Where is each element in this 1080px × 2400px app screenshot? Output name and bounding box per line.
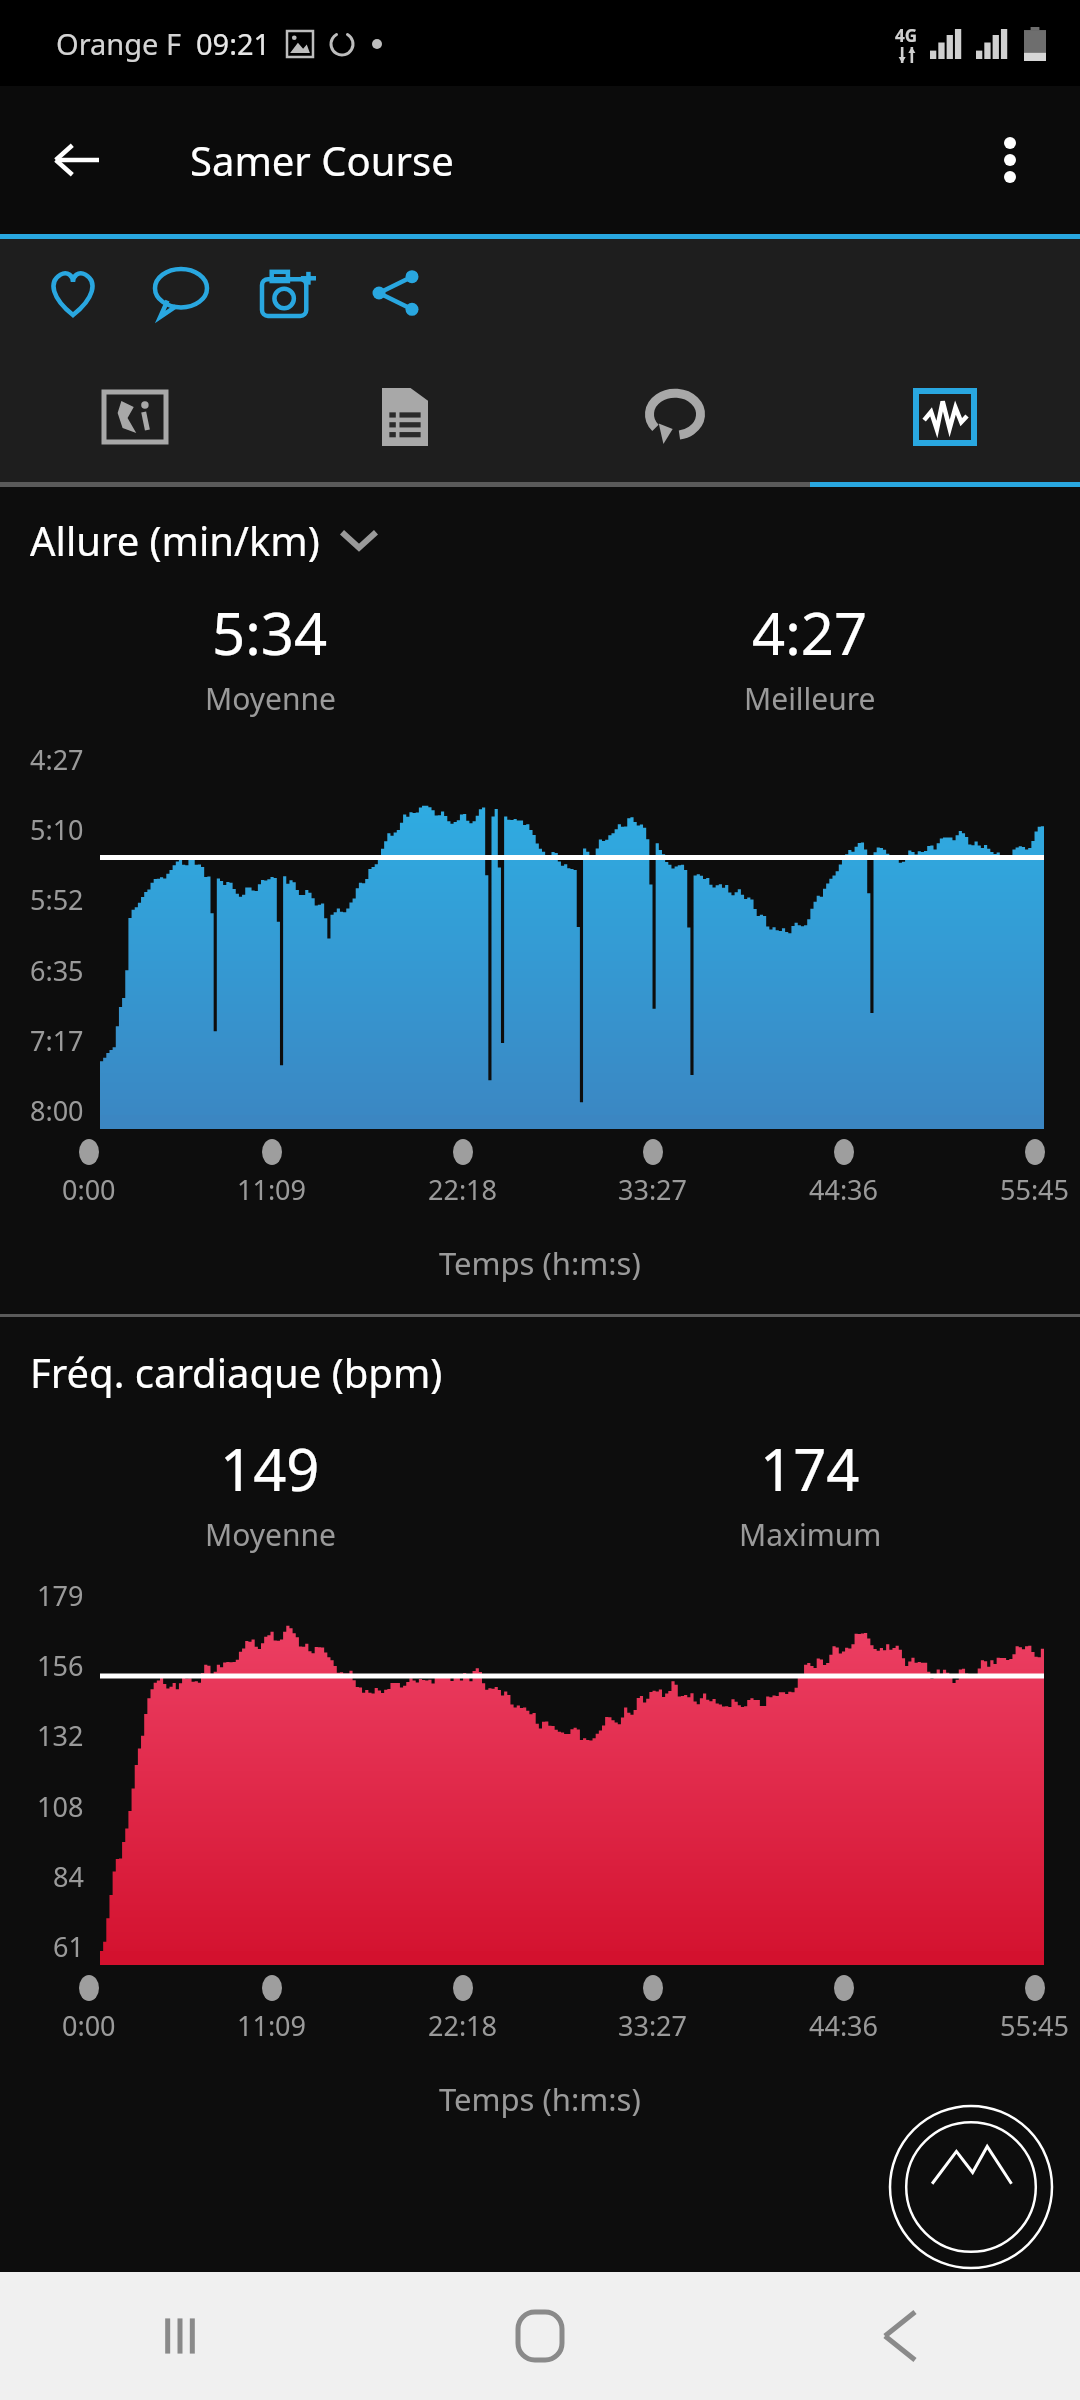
button[interactable]: Back [34,118,118,202]
staticText: 149 [220,1429,320,1508]
button[interactable]: Allure (min/km) [30,513,376,567]
staticText: 4:27 [30,741,84,778]
staticText: 33:27 [618,2007,688,2044]
staticText: 09:21 [196,24,271,63]
staticText: 5:34 [212,593,328,672]
staticText: Allure (min/km) [30,513,320,567]
button[interactable]: Add photo [250,254,328,332]
button[interactable]: Comment [142,254,220,332]
button[interactable]: Recent apps [0,2272,360,2400]
staticText: Temps (h:m:s) [439,1242,641,1284]
button[interactable]: Home [360,2272,720,2400]
button[interactable]: Share [358,254,436,332]
staticText: 132 [37,1717,84,1754]
staticText: Moyenne [205,1514,336,1555]
staticText: 0:00 [62,2007,116,2044]
staticText: 0:00 [62,1171,116,1208]
staticText: 55:45 [1000,2007,1070,2044]
staticText: Meilleure [744,678,876,719]
staticText: Moyenne [205,678,336,719]
staticText: 33:27 [618,1171,688,1208]
staticText: 44:36 [809,1171,879,1208]
button[interactable]: Laps [540,347,810,487]
staticText: 5:10 [30,811,84,848]
staticText: 7:17 [30,1022,84,1059]
button[interactable]: Map [0,347,270,487]
staticText: Fréq. cardiaque (bpm) [30,1345,443,1399]
button[interactable]: More options [968,118,1052,202]
staticText: Orange F [56,24,182,63]
staticText: 5:52 [30,881,84,918]
staticText: 4G [895,24,918,47]
staticText: 22:18 [428,1171,498,1208]
staticText: 44:36 [809,2007,879,2044]
staticText: 179 [37,1577,84,1614]
staticText: 4:27 [752,593,868,672]
staticText: Temps (h:m:s) [439,2078,641,2120]
staticText: 6:35 [30,952,84,989]
staticText: 61 [53,1928,84,1965]
button[interactable]: Charts [810,347,1080,487]
button[interactable]: Back [720,2272,1080,2400]
staticText: 55:45 [1000,1171,1070,1208]
button[interactable]: Like [34,254,112,332]
staticText: 174 [760,1429,860,1508]
button[interactable]: Details [270,347,540,487]
staticText: 84 [53,1858,84,1895]
staticText: 22:18 [428,2007,498,2044]
staticText: Samer Course [190,133,454,187]
staticText: 11:09 [237,2007,307,2044]
staticText: 8:00 [30,1092,84,1129]
staticText: 156 [37,1647,84,1684]
staticText: 11:09 [237,1171,307,1208]
staticText: 108 [37,1788,84,1825]
staticText: Maximum [739,1514,882,1555]
